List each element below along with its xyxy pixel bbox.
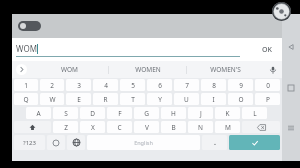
staticText: 4 — [104, 81, 108, 90]
button[interactable]: T — [120, 93, 145, 105]
button[interactable]: WOM — [30, 61, 108, 78]
button[interactable]: WOMEN'S — [187, 61, 264, 78]
staticText: 8 — [212, 81, 216, 90]
staticText: K — [225, 109, 230, 118]
staticText: 6 — [158, 81, 162, 90]
button[interactable]: 2 — [40, 79, 64, 91]
staticText: C — [117, 123, 122, 132]
staticText: I — [212, 95, 215, 104]
button[interactable]: WOM — [12, 38, 282, 61]
button[interactable]: E — [66, 93, 91, 105]
button[interactable]: W — [40, 93, 64, 105]
button[interactable]: Profile — [272, 2, 291, 21]
button[interactable]: F — [107, 107, 132, 119]
staticText: 9 — [239, 81, 243, 90]
button[interactable]: Emoji — [47, 135, 65, 150]
staticText: F — [118, 109, 122, 118]
staticText: G — [144, 109, 149, 118]
button[interactable]: ?123 — [14, 135, 45, 150]
button[interactable]: V — [134, 121, 159, 133]
button[interactable]: L — [242, 107, 267, 119]
staticText: A — [36, 109, 41, 118]
staticText: R — [103, 95, 108, 104]
button[interactable]: 1 — [14, 79, 38, 91]
staticText: U — [184, 95, 189, 104]
staticText: WOM — [61, 65, 78, 74]
button[interactable]: Change language — [67, 135, 85, 150]
button[interactable]: S — [53, 107, 78, 119]
staticText: Y — [158, 95, 162, 104]
staticText: 2 — [50, 81, 54, 90]
button[interactable]: Backspace — [242, 121, 280, 133]
button[interactable]: 0 — [255, 79, 280, 91]
button[interactable]: X — [80, 121, 105, 133]
button[interactable]: Shift — [14, 121, 51, 133]
staticText: X — [91, 123, 95, 132]
button[interactable]: Y — [147, 93, 172, 105]
button[interactable]: P — [255, 93, 280, 105]
button[interactable]: B — [161, 121, 186, 133]
button[interactable]: Enter — [229, 135, 280, 150]
staticText: 0 — [266, 81, 270, 90]
button[interactable]: 6 — [147, 79, 172, 91]
button[interactable]: A — [26, 107, 51, 119]
button[interactable]: J — [188, 107, 213, 119]
button[interactable]: R — [93, 93, 118, 105]
button[interactable]: Toggle — [18, 21, 41, 31]
staticText: V — [145, 123, 149, 132]
staticText: OK — [262, 45, 272, 55]
staticText: Z — [64, 123, 68, 132]
button[interactable]: Home — [283, 80, 299, 96]
button[interactable]: Space — [87, 135, 200, 150]
button[interactable]: I — [201, 93, 226, 105]
button[interactable]: Voice input — [264, 61, 282, 78]
staticText: WOMEN'S — [210, 65, 241, 74]
staticText: 3 — [77, 81, 81, 90]
button[interactable]: O — [228, 93, 253, 105]
button[interactable]: 9 — [228, 79, 253, 91]
staticText: Q — [23, 95, 29, 104]
staticText: H — [171, 109, 176, 118]
staticText: W — [49, 95, 56, 104]
staticText: 7 — [185, 81, 189, 90]
button[interactable]: 7 — [174, 79, 199, 91]
staticText: O — [238, 95, 244, 104]
button[interactable]: 8 — [201, 79, 226, 91]
button[interactable]: Period — [202, 135, 227, 150]
staticText: . — [214, 138, 216, 148]
button[interactable]: Expand suggestions — [12, 61, 30, 78]
staticText: T — [131, 95, 135, 104]
staticText: P — [266, 95, 270, 104]
button[interactable]: Q — [14, 93, 38, 105]
button[interactable]: 4 — [93, 79, 118, 91]
staticText: M — [225, 123, 231, 132]
button[interactable]: Back — [283, 39, 299, 55]
staticText: WOM — [16, 43, 37, 54]
staticText: WOMEN — [135, 65, 161, 74]
staticText: B — [171, 123, 176, 132]
button[interactable]: G — [134, 107, 159, 119]
staticText: N — [198, 123, 203, 132]
staticText: S — [64, 109, 68, 118]
staticText: English — [134, 139, 153, 146]
button[interactable]: H — [161, 107, 186, 119]
staticText: L — [253, 109, 257, 118]
button[interactable]: K — [215, 107, 240, 119]
button[interactable]: C — [107, 121, 132, 133]
staticText: J — [200, 109, 202, 118]
button[interactable]: N — [188, 121, 213, 133]
button[interactable]: 5 — [120, 79, 145, 91]
button[interactable]: M — [215, 121, 240, 133]
staticText: ?123 — [23, 139, 36, 147]
button[interactable]: Recents — [283, 120, 299, 136]
button[interactable]: WOMEN — [109, 61, 186, 78]
button[interactable]: Z — [53, 121, 78, 133]
button[interactable]: 3 — [66, 79, 91, 91]
staticText: D — [90, 109, 95, 118]
button[interactable]: OK — [262, 45, 272, 55]
staticText: E — [77, 95, 81, 104]
button[interactable]: U — [174, 93, 199, 105]
staticText: 1 — [24, 81, 28, 90]
button[interactable]: D — [80, 107, 105, 119]
staticText: 5 — [131, 81, 135, 90]
